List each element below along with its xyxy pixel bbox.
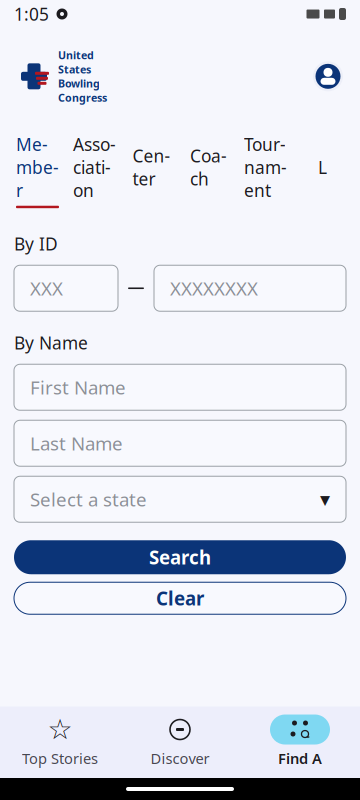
button[interactable]: XXX xyxy=(14,265,118,311)
staticText: XXX xyxy=(30,276,63,301)
staticText: Bowling xyxy=(58,76,100,90)
button[interactable]: Search xyxy=(14,540,346,574)
staticText: Coach xyxy=(190,144,227,190)
staticText: Association xyxy=(73,133,116,202)
staticText: ☆ xyxy=(47,714,72,745)
button[interactable]: Center xyxy=(130,140,173,199)
staticText: Search xyxy=(149,545,211,570)
button[interactable]: Clear xyxy=(14,582,346,614)
staticText: By Name xyxy=(14,331,88,354)
button[interactable]: Member xyxy=(16,129,59,210)
staticText: XXXXXXXX xyxy=(170,276,258,301)
staticText: By ID xyxy=(14,232,58,255)
button[interactable]: Last Name xyxy=(14,420,346,466)
staticText: Center xyxy=(132,144,170,190)
button[interactable]: Tournament xyxy=(244,129,287,210)
staticText: Discover xyxy=(150,748,209,768)
staticText: Select a state xyxy=(30,487,147,512)
staticText: Top Stories xyxy=(22,748,98,768)
button[interactable]: L xyxy=(301,152,344,187)
staticText: Clear xyxy=(156,586,204,611)
button[interactable]: Account xyxy=(312,60,344,92)
staticText: Tournament xyxy=(244,133,287,202)
staticText: Find A xyxy=(278,748,322,768)
staticText: Last Name xyxy=(30,431,123,456)
staticText: States xyxy=(58,62,91,76)
button[interactable]: United States Bowling Congress home xyxy=(16,42,107,111)
button[interactable]: Select a state xyxy=(14,476,346,522)
staticText: 1:05 xyxy=(14,2,49,25)
button[interactable]: ☆ xyxy=(0,706,120,778)
staticText: ▾ xyxy=(320,488,330,511)
button[interactable]: XXXXXXXX xyxy=(154,265,346,311)
button[interactable]: Association xyxy=(73,129,116,210)
staticText: Member xyxy=(16,133,59,202)
staticText: Congress xyxy=(58,90,107,105)
staticText: First Name xyxy=(30,375,126,400)
staticText: L xyxy=(318,156,327,179)
button[interactable]: First Name xyxy=(14,364,346,410)
staticText: United xyxy=(58,48,94,62)
button[interactable]: Find A xyxy=(240,706,360,778)
button[interactable]: Coach xyxy=(187,140,230,199)
button[interactable]: Discover xyxy=(120,706,240,778)
